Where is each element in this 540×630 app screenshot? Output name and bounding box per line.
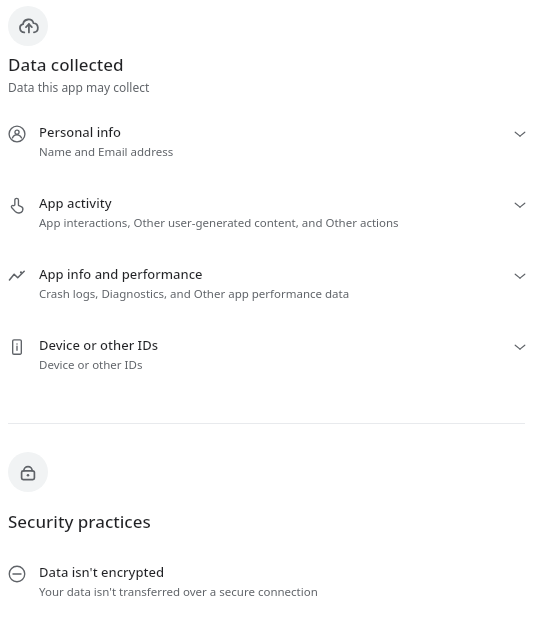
other: Expand Device or other IDs	[512, 339, 528, 355]
staticText: Crash logs, Diagnostics, and Other app p…	[39, 286, 350, 302]
staticText: Personal info	[39, 123, 121, 141]
button[interactable]: Device or other IDs	[0, 330, 540, 379]
button[interactable]: App info and performance	[0, 259, 540, 308]
staticText: App activity	[39, 194, 112, 212]
other: Expand Personal info	[512, 126, 528, 142]
staticText: Your data isn't transferred over a secur…	[39, 584, 318, 600]
button[interactable]: Data isn't encrypted	[0, 557, 540, 606]
staticText: Security practices	[8, 510, 151, 533]
staticText: Name and Email address	[39, 144, 174, 160]
staticText: App interactions, Other user-generated c…	[39, 215, 399, 231]
staticText: Data this app may collect	[8, 79, 150, 95]
staticText: Data collected	[8, 53, 124, 76]
button[interactable]: App activity	[0, 188, 540, 237]
staticText: Device or other IDs	[39, 357, 143, 373]
other: Expand App info and performance	[512, 268, 528, 284]
staticText: App info and performance	[39, 265, 203, 283]
button[interactable]: Personal info	[0, 117, 540, 166]
staticText: Data isn't encrypted	[39, 563, 164, 581]
staticText: Device or other IDs	[39, 336, 158, 354]
other: Expand App activity	[512, 197, 528, 213]
